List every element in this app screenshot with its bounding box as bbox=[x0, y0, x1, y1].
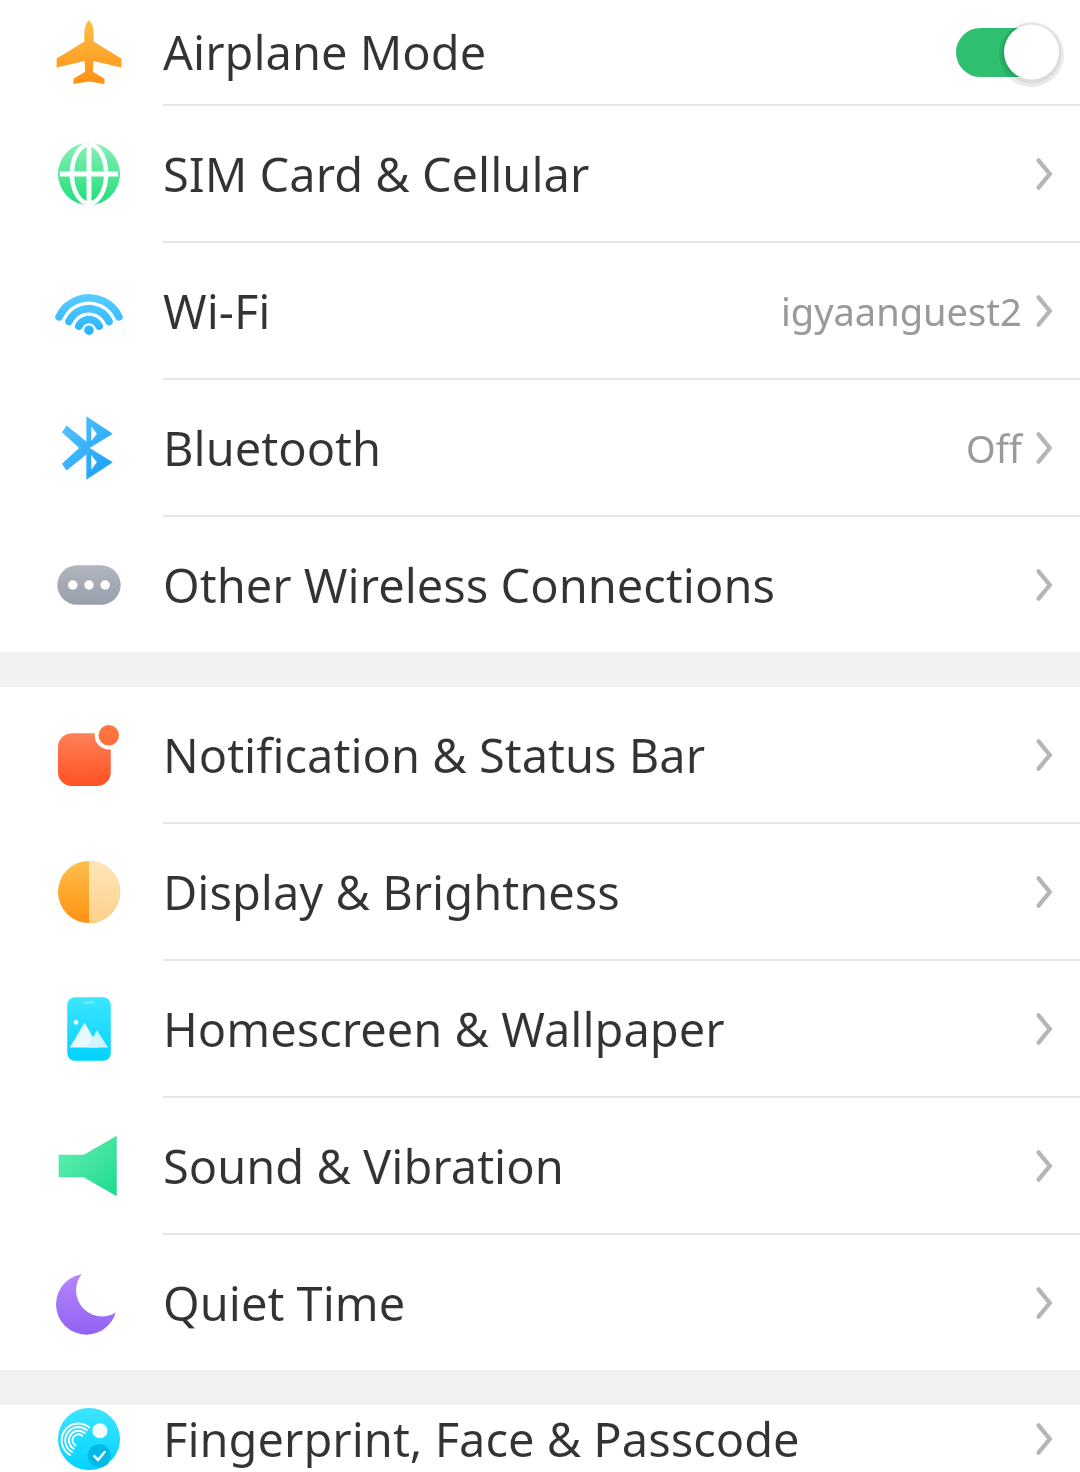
button[interactable]: Bluetooth bbox=[0, 380, 1080, 515]
staticText: Sound & Vibration bbox=[163, 1134, 1036, 1198]
staticText: Quiet Time bbox=[163, 1271, 1036, 1335]
button[interactable]: Sound & Vibration bbox=[0, 1098, 1080, 1233]
staticText: igyaanguest2 bbox=[781, 285, 1022, 337]
staticText: Notification & Status Bar bbox=[163, 723, 1036, 787]
button[interactable]: Other Wireless Connections bbox=[0, 517, 1080, 652]
button[interactable]: Airplane Mode bbox=[0, 0, 1080, 104]
button[interactable]: Wi-Fi bbox=[0, 243, 1080, 378]
staticText: Off bbox=[966, 422, 1022, 474]
button[interactable]: Quiet Time bbox=[0, 1235, 1080, 1370]
button[interactable]: Fingerprint, Face & Passcode bbox=[0, 1405, 1080, 1472]
staticText: Fingerprint, Face & Passcode bbox=[163, 1407, 1036, 1471]
button[interactable]: Homescreen & Wallpaper bbox=[0, 961, 1080, 1096]
staticText: Wi-Fi bbox=[163, 279, 781, 343]
staticText: Display & Brightness bbox=[163, 860, 1036, 924]
staticText: SIM Card & Cellular bbox=[163, 142, 1036, 206]
staticText: Other Wireless Connections bbox=[163, 553, 1036, 617]
button[interactable]: Display & Brightness bbox=[0, 824, 1080, 959]
button[interactable]: Airplane Mode toggle, on bbox=[956, 23, 1060, 81]
button[interactable]: SIM Card & Cellular bbox=[0, 106, 1080, 241]
staticText: Airplane Mode bbox=[163, 20, 956, 84]
staticText: Bluetooth bbox=[163, 416, 966, 480]
staticText: Homescreen & Wallpaper bbox=[163, 997, 1036, 1061]
button[interactable]: Notification & Status Bar bbox=[0, 687, 1080, 822]
